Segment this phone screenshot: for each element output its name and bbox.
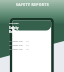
button[interactable]: SAFETY REPORTS xyxy=(0,0,64,9)
staticText: 12 xyxy=(26,43,29,46)
staticText: SAFETY REPORTS xyxy=(16,2,49,7)
button[interactable]: Incident log xyxy=(9,38,30,42)
staticText: 12 xyxy=(26,47,29,50)
staticText: Safety Reports xyxy=(9,26,30,34)
staticText: Incident log xyxy=(9,39,23,42)
staticText: Incident log xyxy=(9,47,23,50)
staticText: 12 xyxy=(26,39,29,42)
button[interactable]: Incident log xyxy=(9,42,30,46)
staticText: Incident log xyxy=(9,43,23,46)
staticText: Overview xyxy=(9,22,19,25)
button[interactable]: Incident log xyxy=(9,46,30,50)
